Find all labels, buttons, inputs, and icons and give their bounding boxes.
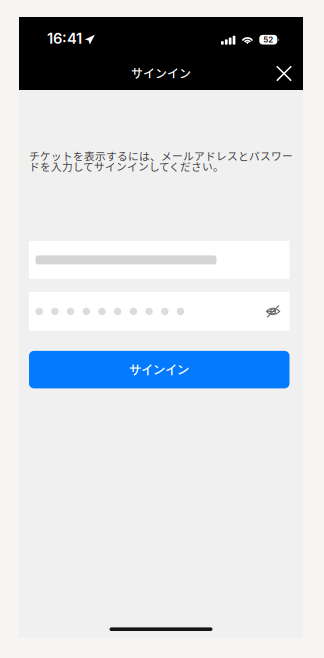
staticText: 16:41	[47, 30, 82, 47]
button[interactable]: 閉じる	[269, 58, 299, 88]
button[interactable]: サインイン	[29, 351, 289, 388]
button[interactable]: パスワードを表示	[265, 304, 280, 319]
staticText: サインイン	[131, 64, 191, 82]
staticText: チケットを表示するには、メールアドレスとパスワードを入力してサインインしてくださ…	[29, 148, 293, 174]
staticText: 52	[263, 35, 273, 45]
staticText: サインイン	[129, 362, 189, 377]
